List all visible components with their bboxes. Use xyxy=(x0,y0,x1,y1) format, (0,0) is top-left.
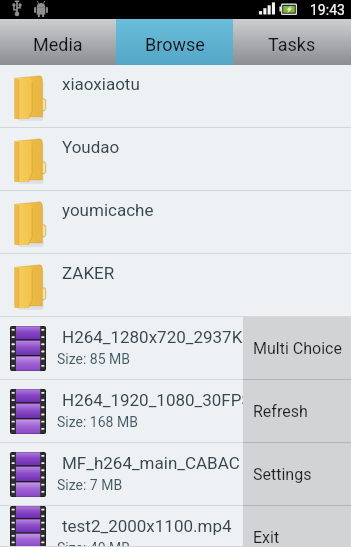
staticText: xiaoxiaotu xyxy=(62,74,140,94)
staticText: Browse xyxy=(145,34,205,55)
staticText: Exit xyxy=(253,528,280,547)
staticText: Size: 7 MB xyxy=(57,477,123,493)
staticText: Size: 40 MB xyxy=(57,540,130,547)
staticText: Media xyxy=(33,34,83,55)
button[interactable]: Exit xyxy=(243,506,351,547)
staticText: 19:43 xyxy=(310,2,345,18)
button[interactable]: Browse xyxy=(116,19,233,65)
staticText: H264_1920_1080_30FPS xyxy=(62,390,252,410)
staticText: youmicache xyxy=(62,200,154,220)
button[interactable]: ZAKER xyxy=(0,254,351,317)
staticText: Multi Choice xyxy=(253,339,342,358)
button[interactable]: xiaoxiaotu xyxy=(0,65,351,128)
button[interactable]: Tasks xyxy=(233,19,351,65)
staticText: test2_2000x1100.mp4 xyxy=(62,516,232,536)
button[interactable]: Media xyxy=(0,19,116,65)
button[interactable]: youmicache xyxy=(0,191,351,254)
button[interactable]: Multi Choice xyxy=(243,317,351,380)
staticText: Settings xyxy=(253,465,312,484)
staticText: Size: 168 MB xyxy=(57,414,138,430)
button[interactable]: H264_1920_1080_30FPS xyxy=(0,380,351,443)
staticText: ZAKER xyxy=(62,263,115,283)
button[interactable]: test2_2000x1100.mp4 xyxy=(0,506,351,547)
button[interactable]: Youdao xyxy=(0,128,351,191)
button[interactable]: Settings xyxy=(243,443,351,506)
button[interactable]: H264_1280x720_2937K xyxy=(0,317,351,380)
staticText: Refresh xyxy=(253,402,308,421)
staticText: Tasks xyxy=(268,34,316,55)
staticText: H264_1280x720_2937K xyxy=(62,327,243,347)
staticText: Youdao xyxy=(62,137,120,157)
staticText: MF_h264_main_CABAC xyxy=(62,453,240,473)
button[interactable]: MF_h264_main_CABAC xyxy=(0,443,351,506)
staticText: Size: 85 MB xyxy=(57,351,130,367)
button[interactable]: Refresh xyxy=(243,380,351,443)
